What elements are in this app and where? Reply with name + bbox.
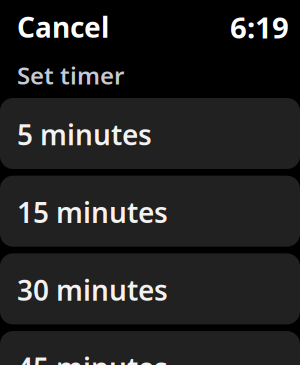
button[interactable]: Cancel — [17, 2, 109, 52]
staticText: 30 minutes — [17, 271, 168, 308]
button[interactable]: 45 minutes — [0, 331, 300, 365]
staticText: 6:19 — [230, 7, 289, 46]
button[interactable]: 30 minutes — [0, 253, 300, 324]
staticText: 5 minutes — [17, 116, 152, 153]
staticText: 15 minutes — [17, 194, 168, 231]
button[interactable]: 5 minutes — [0, 98, 300, 169]
staticText: Cancel — [17, 8, 109, 46]
staticText: 45 minutes — [17, 349, 168, 365]
staticText: Set timer — [17, 59, 124, 91]
button[interactable]: 15 minutes — [0, 176, 300, 247]
